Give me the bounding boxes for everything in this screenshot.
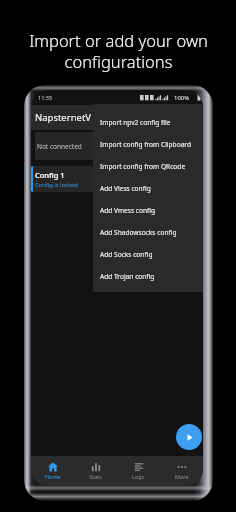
staticText: Config is locked bbox=[35, 181, 78, 189]
staticText: Import config from QRcode bbox=[100, 162, 186, 171]
staticText: Logs bbox=[132, 473, 145, 480]
button[interactable]: Config 1 bbox=[31, 166, 144, 192]
button[interactable]: Add Trojan config bbox=[93, 265, 203, 287]
button[interactable]: Add Shadowsocks config bbox=[93, 221, 203, 243]
button[interactable]: Not connected bbox=[35, 132, 123, 160]
staticText: Not connected bbox=[37, 142, 82, 151]
staticText: Stats bbox=[89, 473, 102, 480]
button[interactable]: Import config from QRcode bbox=[93, 155, 203, 177]
staticText: Add Trojan config bbox=[100, 272, 155, 281]
staticText: More bbox=[175, 473, 189, 480]
button[interactable]: Import npv2 config file bbox=[93, 111, 203, 133]
button[interactable]: Home bbox=[31, 462, 74, 480]
staticText: Home bbox=[45, 473, 61, 480]
staticText: 100% bbox=[174, 94, 190, 102]
button[interactable]: NapsternetV bbox=[31, 105, 203, 130]
button[interactable]: Connect bbox=[176, 424, 202, 450]
staticText: Import npv2 config file bbox=[100, 118, 171, 127]
staticText: Import config from Clipboard bbox=[100, 140, 191, 149]
staticText: Import or add your own configurations bbox=[29, 29, 208, 73]
staticText: Add Vmess config bbox=[100, 206, 156, 215]
button[interactable]: Add Vless config bbox=[93, 177, 203, 199]
button[interactable]: Add Vmess config bbox=[93, 199, 203, 221]
staticText: NapsternetV bbox=[35, 111, 92, 124]
staticText: Config 1 bbox=[35, 170, 65, 180]
staticText: Add Vless config bbox=[100, 184, 151, 193]
staticText: Add Socks config bbox=[100, 250, 153, 259]
button[interactable]: Stats bbox=[74, 462, 117, 480]
button[interactable]: Import config from Clipboard bbox=[93, 133, 203, 155]
staticText: Add Shadowsocks config bbox=[100, 228, 177, 237]
button[interactable]: Add Socks config bbox=[93, 243, 203, 265]
staticText: 11:35 bbox=[38, 94, 53, 101]
button[interactable]: More bbox=[160, 462, 203, 480]
button[interactable]: Logs bbox=[117, 462, 160, 480]
